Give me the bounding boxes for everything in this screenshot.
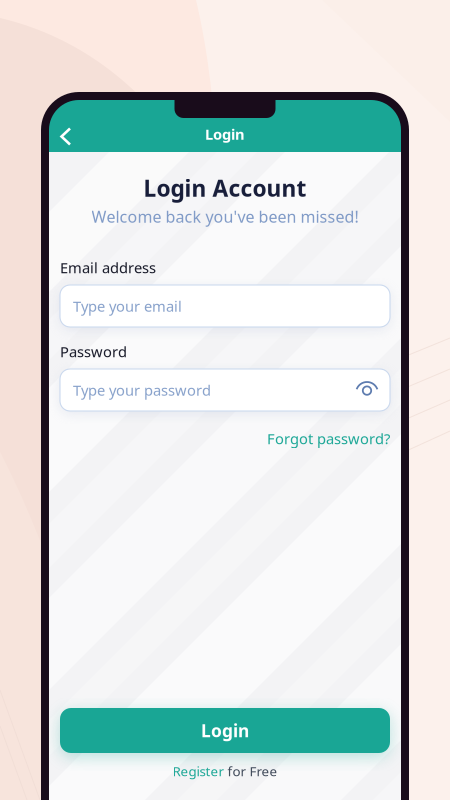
staticText: Type your password <box>73 380 211 400</box>
staticText: Login Account <box>143 173 306 203</box>
button[interactable]: Back <box>49 119 83 153</box>
staticText: Welcome back you've been missed! <box>91 206 358 227</box>
staticText: Email address <box>60 258 156 277</box>
staticText: Login <box>205 124 245 144</box>
staticText: Password <box>60 342 127 361</box>
staticText: Register <box>172 762 224 780</box>
button[interactable]: Register <box>172 763 277 779</box>
staticText: for Free <box>224 762 277 780</box>
staticText: Forgot password? <box>267 429 390 448</box>
staticText: Login <box>201 719 249 742</box>
staticText: Type your email <box>73 296 182 316</box>
button[interactable]: Login <box>60 708 390 753</box>
button[interactable]: Forgot password? <box>267 431 390 446</box>
